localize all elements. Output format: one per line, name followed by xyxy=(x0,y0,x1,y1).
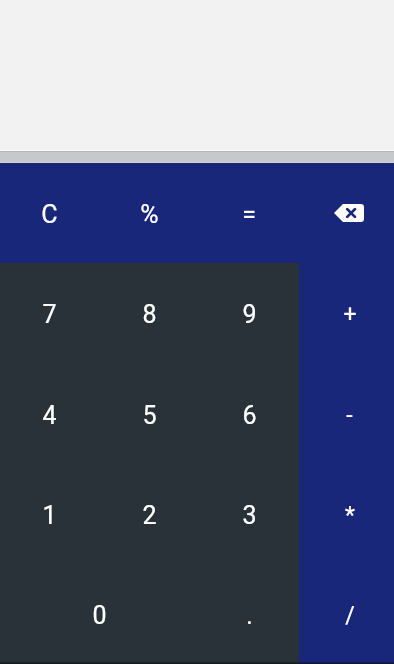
staticText: 9 xyxy=(242,300,257,329)
button[interactable]: = xyxy=(200,163,300,263)
staticText: - xyxy=(346,402,353,429)
button[interactable]: 5 xyxy=(100,364,200,464)
staticText: 5 xyxy=(142,401,157,430)
button[interactable]: 4 xyxy=(0,364,100,464)
button[interactable]: 0 xyxy=(0,564,199,664)
button[interactable]: / xyxy=(299,564,394,664)
button[interactable]: + xyxy=(299,263,394,364)
staticText: % xyxy=(140,200,159,229)
button[interactable]: . xyxy=(199,564,299,664)
staticText: C xyxy=(41,200,58,229)
staticText: 1 xyxy=(42,501,57,530)
staticText: 3 xyxy=(242,501,257,530)
button[interactable]: 2 xyxy=(100,464,200,564)
staticText: + xyxy=(343,301,357,328)
staticText: 0 xyxy=(92,601,107,630)
button[interactable]: 1 xyxy=(0,464,100,564)
staticText: * xyxy=(345,502,355,529)
staticText: = xyxy=(242,200,256,229)
staticText: . xyxy=(246,601,253,630)
button[interactable]: * xyxy=(299,464,394,564)
staticText: 7 xyxy=(42,300,57,329)
button[interactable]: 8 xyxy=(100,263,200,364)
staticText: / xyxy=(345,602,355,629)
button[interactable]: 9 xyxy=(200,263,299,364)
staticText: 2 xyxy=(142,501,157,530)
staticText: 4 xyxy=(42,401,57,430)
button[interactable]: % xyxy=(100,163,200,263)
button[interactable]: - xyxy=(299,364,394,464)
button[interactable]: 6 xyxy=(200,364,299,464)
button[interactable]: Backspace xyxy=(300,163,394,263)
staticText: 6 xyxy=(242,401,257,430)
staticText: 8 xyxy=(142,300,157,329)
button[interactable]: C xyxy=(0,163,100,263)
button[interactable]: 3 xyxy=(200,464,299,564)
button[interactable]: 7 xyxy=(0,263,100,364)
